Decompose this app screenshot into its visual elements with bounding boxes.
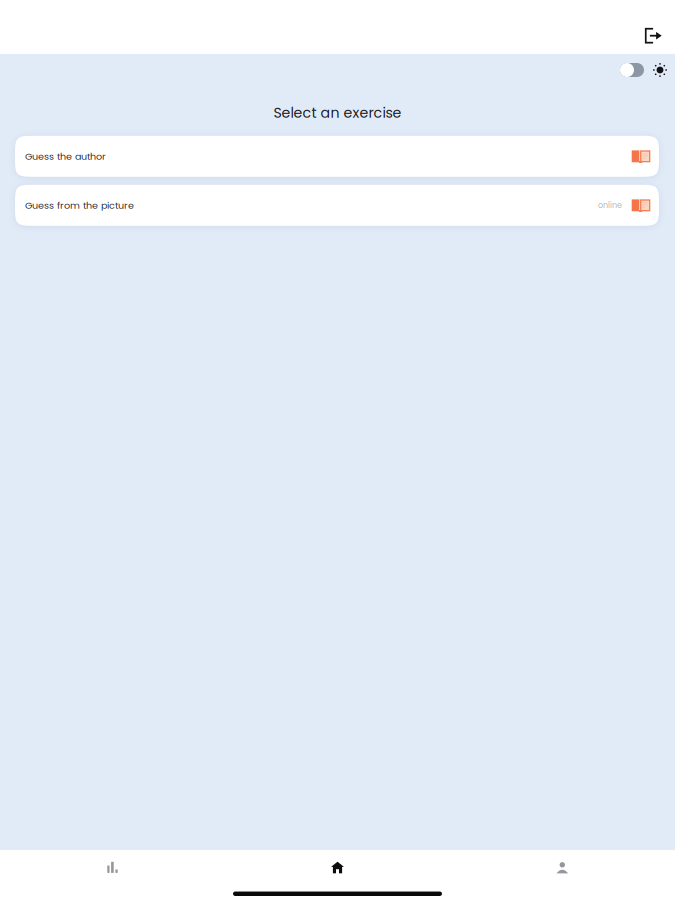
staticText: online (598, 200, 622, 211)
button[interactable]: Home (225, 850, 450, 885)
button[interactable]: Guess from the picture (15, 185, 659, 226)
button[interactable]: Light mode (653, 63, 667, 77)
staticText: Select an exercise (273, 103, 401, 123)
button[interactable]: Log out (632, 0, 675, 54)
staticText: Guess from the picture (25, 199, 134, 212)
button[interactable]: Statistics (0, 850, 225, 885)
button[interactable]: Profile (450, 850, 675, 885)
button[interactable]: Guess the author (15, 136, 659, 177)
button[interactable]: Toggle theme (620, 63, 644, 77)
staticText: Guess the author (25, 150, 106, 163)
